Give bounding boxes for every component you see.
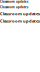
staticText: Classroom updates — [0, 5, 28, 9]
staticText: Classroom updates — [0, 11, 40, 16]
staticText: Classroom updates — [0, 0, 28, 3]
staticText: Classroom updates — [0, 18, 40, 24]
